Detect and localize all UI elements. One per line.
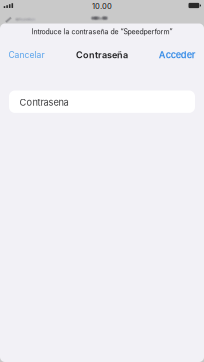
staticText: Introduce la contraseña de “Speedperform… — [31, 28, 172, 36]
staticText: 10.00 — [92, 2, 112, 11]
button[interactable]: Acceder — [150, 40, 204, 70]
staticText: Acceder — [159, 49, 196, 60]
button[interactable]: Cancelar — [0, 40, 53, 70]
staticText: Contraseña — [19, 97, 68, 108]
staticText: Contraseña — [76, 49, 128, 60]
staticText: Cancelar — [8, 50, 44, 60]
button[interactable]: Contraseña — [9, 90, 195, 113]
